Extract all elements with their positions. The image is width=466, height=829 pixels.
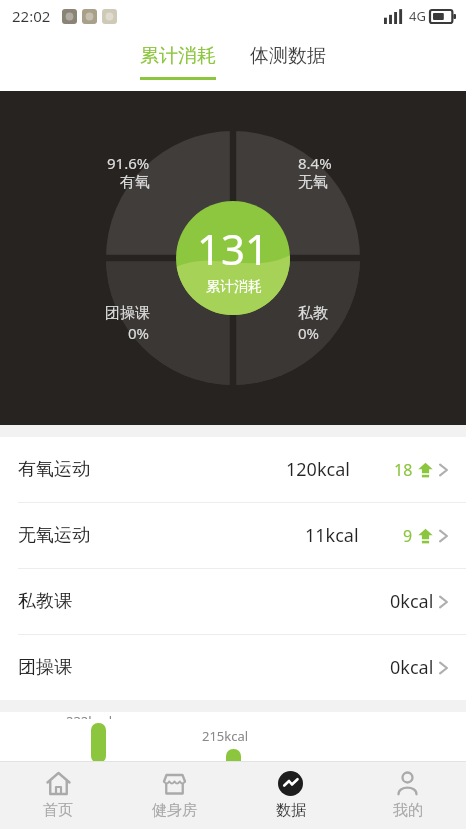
button[interactable]: 健身房	[116, 763, 232, 828]
button[interactable]: 体测数据	[244, 44, 332, 68]
staticText: 22:02	[12, 6, 51, 26]
staticText: 0kcal	[390, 655, 434, 680]
other: 健身房	[162, 771, 187, 796]
other: 数据	[278, 771, 303, 796]
staticText: 9	[403, 525, 413, 547]
staticText: 无氧运动	[18, 524, 90, 547]
staticText: 私教	[298, 304, 328, 323]
staticText: 0%	[128, 323, 150, 343]
staticText: 健身房	[152, 801, 197, 820]
staticText: 4G	[409, 7, 426, 25]
button[interactable]: 私教课	[0, 569, 466, 634]
button[interactable]: 数据	[232, 763, 349, 828]
staticText: 0%	[298, 323, 320, 343]
button[interactable]: 团操课	[0, 635, 466, 700]
staticText: 18	[394, 459, 413, 481]
staticText: 232kcal	[66, 712, 113, 719]
staticText: 体测数据	[250, 44, 326, 68]
button[interactable]: 我的	[349, 763, 466, 828]
staticText: 我的	[393, 801, 423, 820]
staticText: 累计消耗	[206, 278, 262, 296]
staticText: 11kcal	[305, 523, 359, 548]
other: 首页	[46, 771, 71, 796]
other: 我的	[395, 771, 420, 796]
staticText: 131	[197, 220, 270, 277]
staticText: 数据	[276, 801, 306, 820]
button[interactable]: 首页	[0, 763, 116, 828]
staticText: 私教课	[18, 590, 72, 613]
button[interactable]: 有氧运动	[0, 437, 466, 502]
button[interactable]: 无氧运动	[0, 503, 466, 568]
staticText: 215kcal	[202, 727, 249, 745]
staticText: 91.6%	[107, 153, 150, 173]
staticText: 8.4%	[298, 153, 332, 173]
staticText: 累计消耗	[140, 44, 216, 68]
staticText: 团操课	[105, 304, 150, 323]
staticText: 有氧运动	[18, 458, 90, 481]
staticText: 120kcal	[286, 457, 350, 482]
staticText: 团操课	[18, 656, 72, 679]
staticText: 0kcal	[390, 589, 434, 614]
staticText: 首页	[43, 801, 73, 820]
staticText: 有氧	[120, 173, 150, 192]
staticText: 无氧	[298, 173, 328, 192]
button[interactable]: 累计消耗	[134, 44, 222, 80]
